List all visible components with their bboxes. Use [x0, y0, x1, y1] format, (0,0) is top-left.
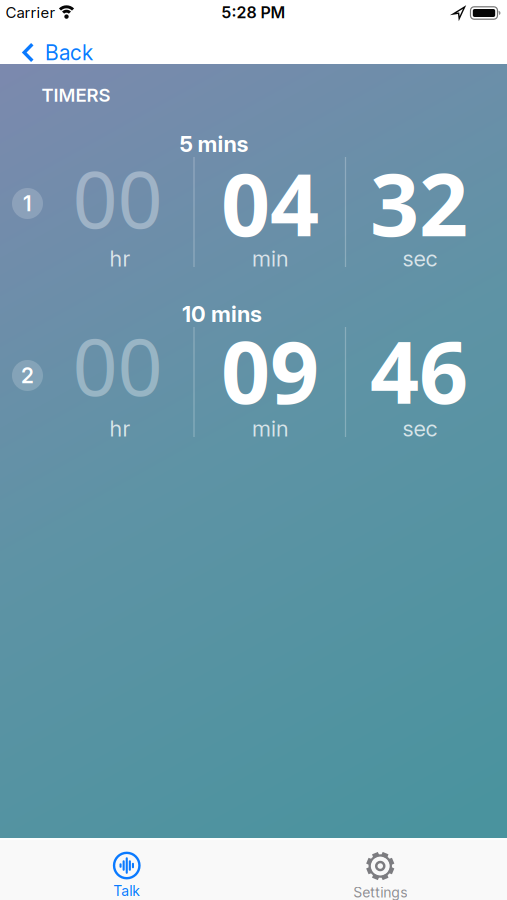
staticText: 5:28 PM — [221, 3, 285, 22]
staticText: min — [252, 415, 289, 442]
staticText: 1 — [23, 191, 32, 216]
staticText: min — [252, 245, 289, 272]
button[interactable]: Talk — [0, 847, 253, 900]
staticText: Talk — [113, 882, 140, 899]
staticText: 00 — [72, 144, 162, 251]
staticText: 09 — [221, 312, 319, 429]
staticText: 32 — [370, 144, 468, 261]
staticText: 5 mins — [179, 131, 248, 157]
button[interactable]: Settings — [254, 847, 507, 900]
staticText: Settings — [353, 884, 407, 900]
button[interactable]: Back — [22, 40, 93, 65]
staticText: Carrier — [5, 3, 55, 21]
staticText: sec — [402, 415, 437, 442]
staticText: sec — [402, 245, 437, 272]
staticText: hr — [109, 245, 130, 272]
staticText: Back — [45, 40, 93, 65]
staticText: 2 — [21, 363, 34, 388]
staticText: 46 — [370, 312, 468, 429]
staticText: 00 — [72, 311, 162, 419]
staticText: 04 — [221, 144, 319, 261]
staticText: hr — [109, 415, 130, 442]
staticText: 10 mins — [182, 301, 262, 327]
staticText: TIMERS — [41, 84, 110, 106]
